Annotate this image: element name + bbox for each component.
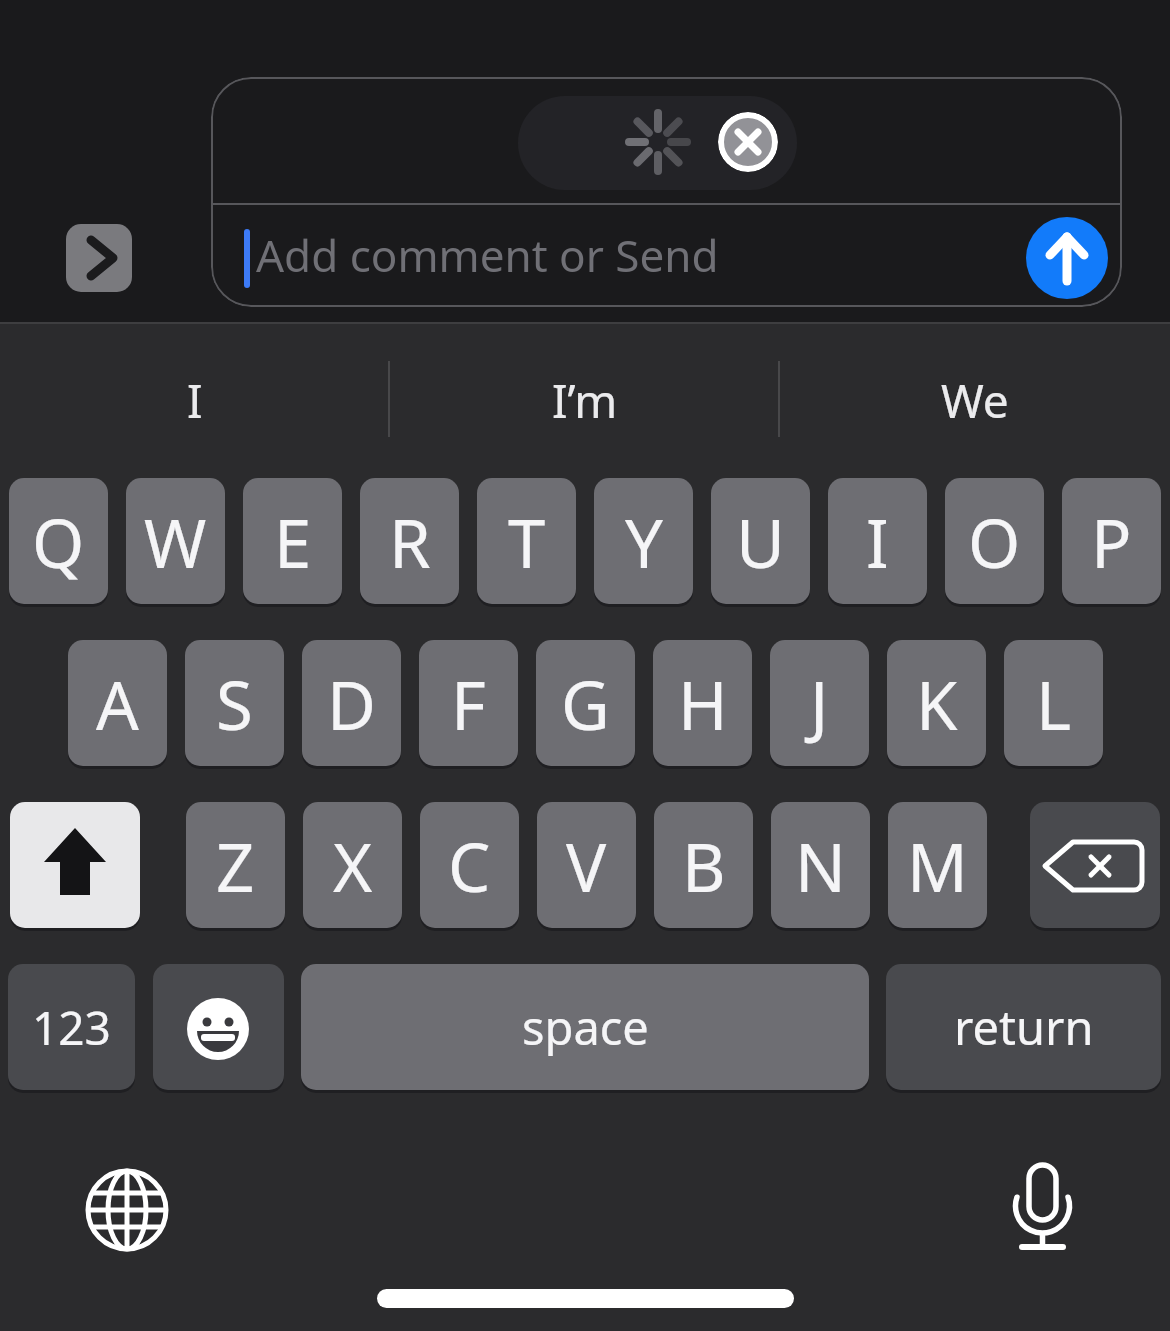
button[interactable]: M [888, 802, 987, 928]
staticText: Add comment or Send [256, 225, 719, 285]
staticText: C [448, 820, 491, 911]
button[interactable] [998, 1155, 1088, 1260]
button[interactable] [66, 224, 132, 292]
button[interactable] [83, 1166, 171, 1254]
staticText: Q [32, 496, 85, 587]
button[interactable]: Z [186, 802, 285, 928]
button[interactable]: L [1004, 640, 1103, 766]
staticText: return [954, 995, 1094, 1059]
button[interactable]: B [654, 802, 753, 928]
button[interactable]: A [68, 640, 167, 766]
staticText: S [216, 658, 253, 749]
button[interactable] [10, 802, 140, 928]
button[interactable]: S [185, 640, 284, 766]
button[interactable]: space [301, 964, 869, 1090]
staticText: T [508, 496, 546, 587]
staticText: space [522, 995, 649, 1059]
staticText: E [274, 496, 312, 587]
button[interactable] [153, 964, 284, 1090]
staticText: R [389, 496, 431, 587]
button[interactable]: T [477, 478, 576, 604]
staticText: N [795, 820, 846, 911]
button[interactable]: We [780, 340, 1170, 460]
button[interactable]: J [770, 640, 869, 766]
button[interactable]: K [887, 640, 986, 766]
button[interactable]: return [886, 964, 1161, 1090]
button[interactable]: I’m [390, 340, 780, 460]
staticText: Z [216, 820, 255, 911]
button[interactable]: H [653, 640, 752, 766]
staticText: O [968, 496, 1021, 587]
button[interactable]: F [419, 640, 518, 766]
staticText: J [810, 658, 829, 749]
button[interactable]: U [711, 478, 810, 604]
button[interactable]: X [303, 802, 402, 928]
button[interactable]: P [1062, 478, 1161, 604]
staticText: P [1091, 496, 1132, 587]
staticText: I’m [552, 369, 618, 432]
button[interactable]: I [0, 340, 390, 460]
button[interactable]: R [360, 478, 459, 604]
staticText: K [916, 658, 958, 749]
button[interactable]: O [945, 478, 1044, 604]
staticText: We [941, 369, 1009, 432]
button[interactable]: Q [9, 478, 108, 604]
button[interactable] [1026, 217, 1108, 299]
staticText: H [678, 658, 728, 749]
staticText: L [1036, 658, 1072, 749]
staticText: Y [625, 496, 663, 587]
staticText: 123 [32, 996, 111, 1059]
staticText: D [327, 658, 376, 749]
button[interactable]: E [243, 478, 342, 604]
staticText: A [96, 658, 139, 749]
button[interactable]: Y [594, 478, 693, 604]
button[interactable] [1030, 802, 1160, 928]
staticText: W [144, 496, 207, 587]
button[interactable]: G [536, 640, 635, 766]
button[interactable]: C [420, 802, 519, 928]
button[interactable]: V [537, 802, 636, 928]
staticText: U [736, 496, 785, 587]
staticText: I [866, 496, 889, 587]
button[interactable]: I [828, 478, 927, 604]
staticText: G [561, 658, 610, 749]
staticText: M [907, 820, 968, 911]
staticText: V [566, 820, 607, 911]
button[interactable]: 123 [8, 964, 135, 1090]
staticText: F [451, 658, 486, 749]
button[interactable]: N [771, 802, 870, 928]
staticText: B [682, 820, 726, 911]
button[interactable]: W [126, 478, 225, 604]
button[interactable]: D [302, 640, 401, 766]
button[interactable] [718, 112, 778, 172]
staticText: X [333, 820, 373, 911]
staticText: I [187, 369, 203, 432]
